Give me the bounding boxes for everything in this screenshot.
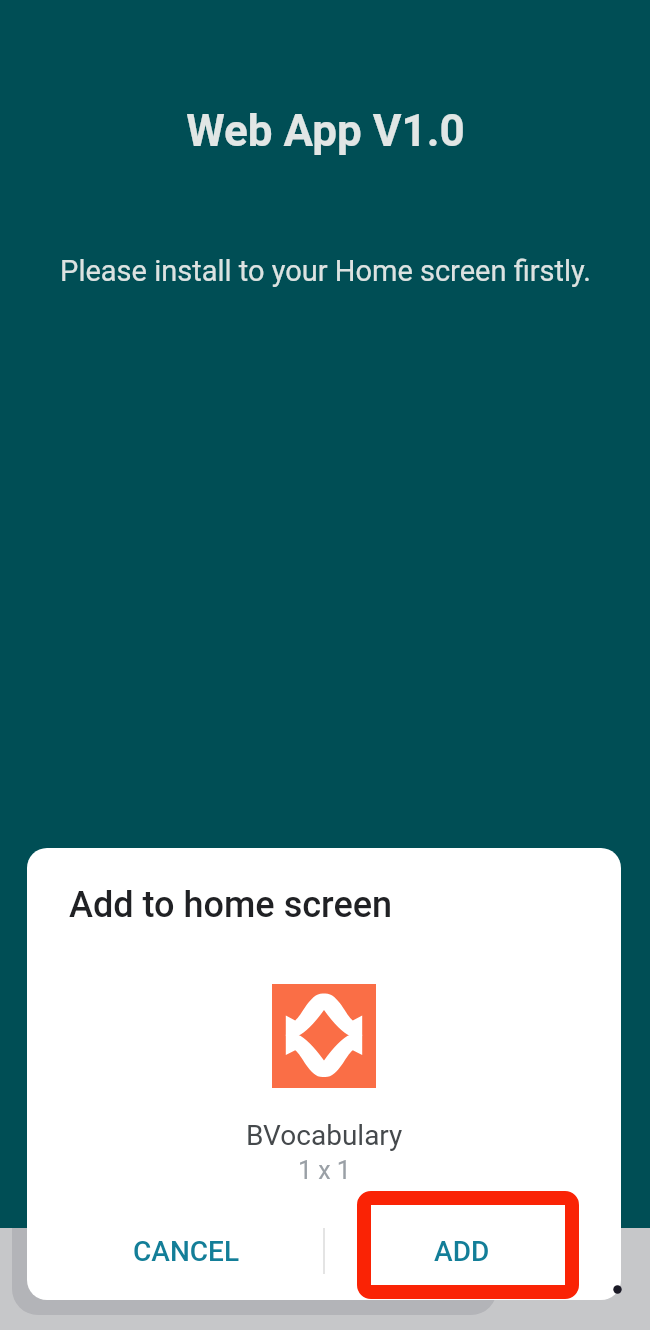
- staticText: ADD: [434, 1235, 490, 1268]
- staticText: 1 x 1: [298, 1156, 351, 1185]
- staticText: Add to home screen: [69, 884, 393, 926]
- staticText: BVocabulary: [246, 1119, 403, 1152]
- staticText: Web App V1.0: [186, 105, 465, 157]
- button[interactable]: CANCEL: [49, 1206, 323, 1296]
- staticText: CANCEL: [133, 1235, 240, 1268]
- staticText: Please install to your Home screen first…: [60, 254, 591, 288]
- button[interactable]: ADD: [325, 1206, 599, 1296]
- other: BVocabulary app icon: [272, 984, 376, 1088]
